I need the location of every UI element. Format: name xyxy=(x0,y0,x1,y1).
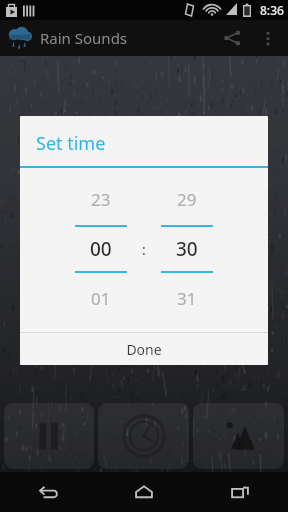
staticText: 8:36 xyxy=(260,2,284,18)
button[interactable]: Back xyxy=(0,472,96,512)
button[interactable]: 29 xyxy=(159,188,215,310)
button[interactable]: Home xyxy=(96,472,192,512)
staticText: 01 xyxy=(91,287,111,310)
button[interactable]: Share xyxy=(214,20,250,56)
staticText: : xyxy=(142,240,146,259)
staticText: 00 xyxy=(90,236,112,262)
staticText: Done xyxy=(126,340,162,359)
staticText: 30 xyxy=(176,236,198,262)
button[interactable]: Done xyxy=(20,333,268,365)
staticText: 23 xyxy=(91,188,111,211)
button[interactable]: Pause xyxy=(4,403,94,469)
button[interactable]: Recents xyxy=(192,472,288,512)
button[interactable]: Timer xyxy=(98,403,189,469)
staticText: 31 xyxy=(177,287,197,310)
staticText: 29 xyxy=(177,188,197,211)
button[interactable]: 23 xyxy=(73,188,129,310)
button[interactable]: Background image xyxy=(193,403,284,469)
staticText: Set time xyxy=(36,131,106,156)
staticText: Rain Sounds xyxy=(40,28,128,48)
button[interactable]: More options xyxy=(250,20,286,56)
